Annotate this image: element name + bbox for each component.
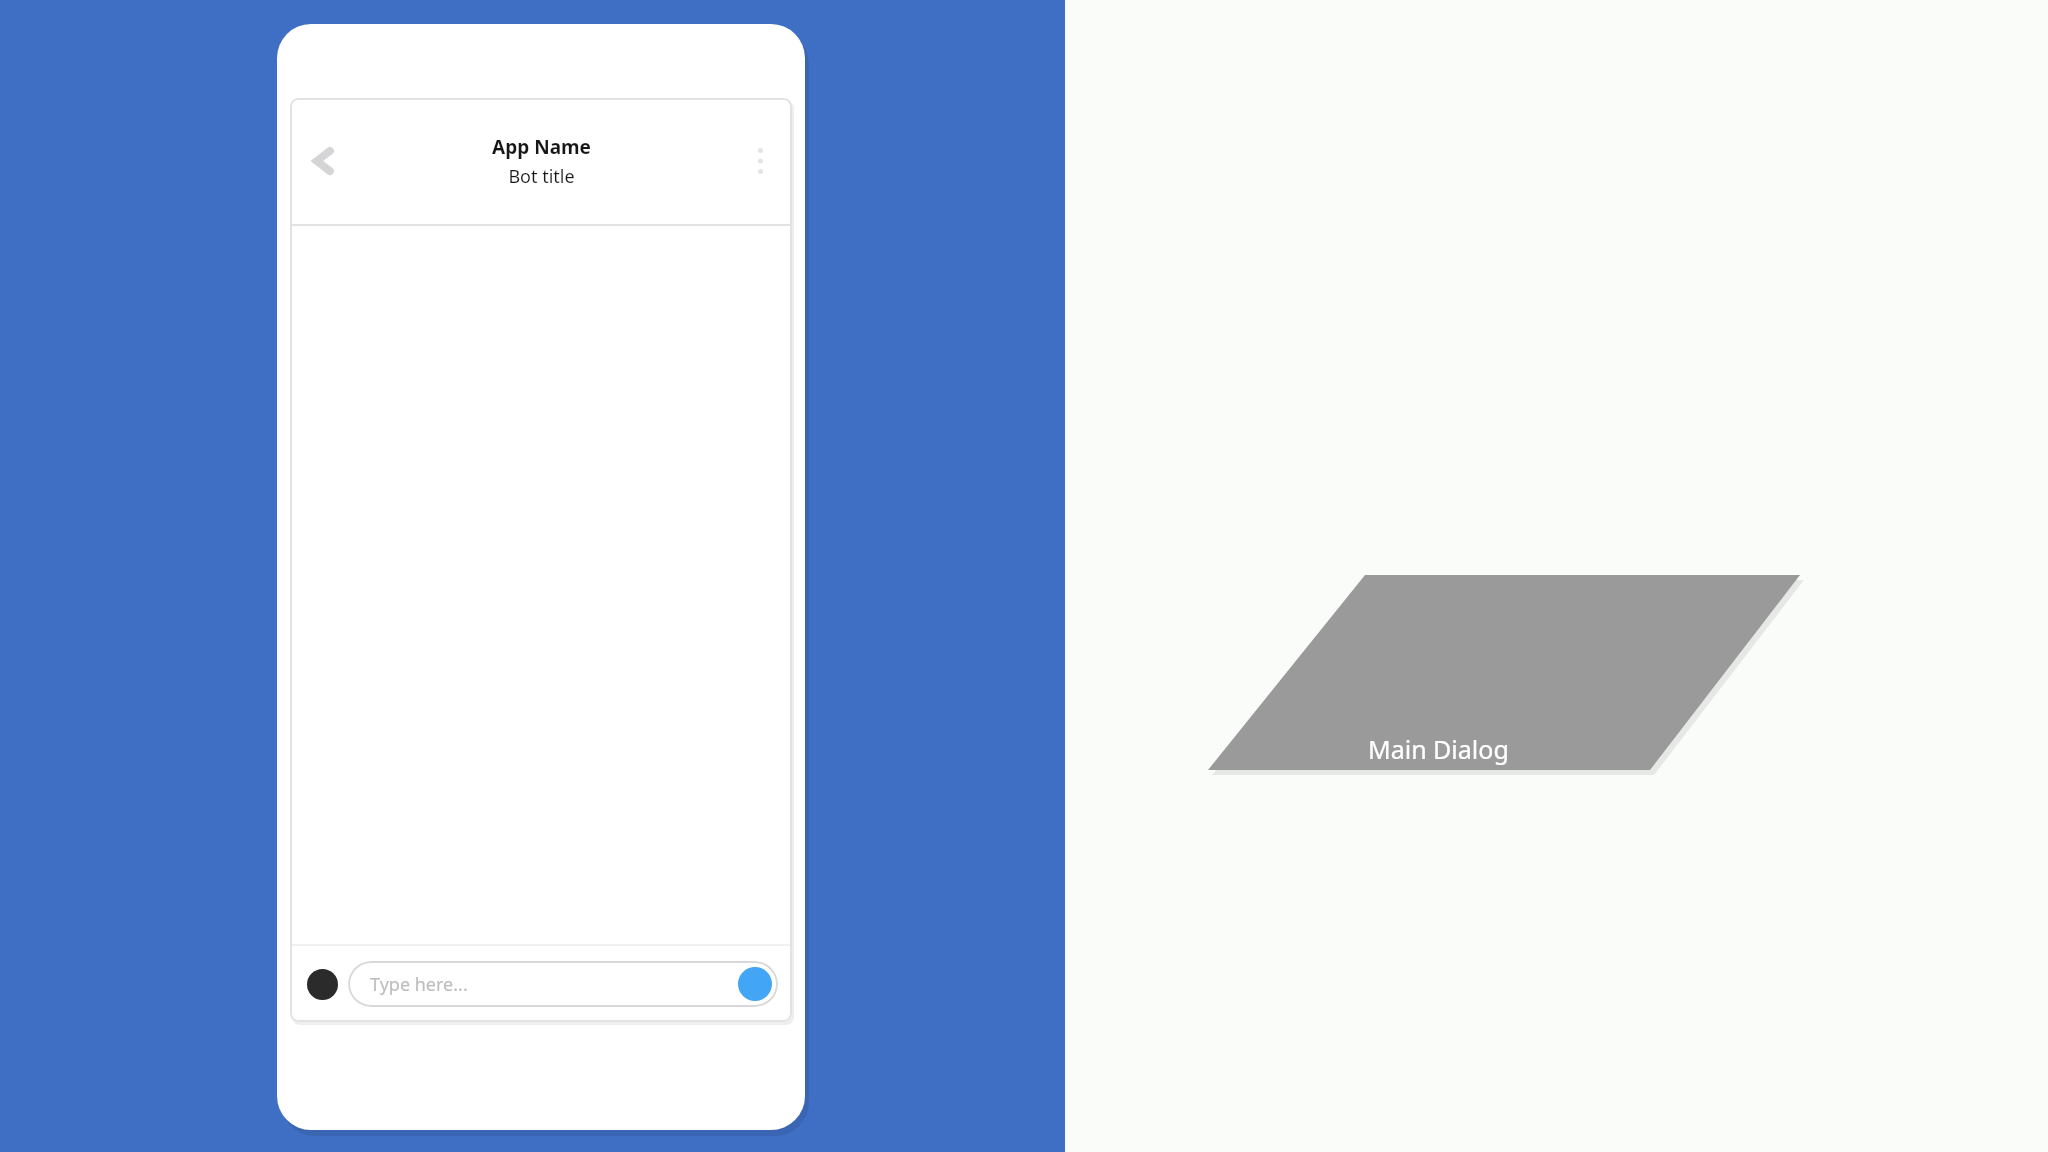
staticText: Main Dialog [1368, 732, 1509, 766]
button[interactable]: Send [736, 965, 774, 1003]
button[interactable]: More options [736, 137, 784, 185]
staticText: Type here... [370, 972, 468, 997]
button[interactable]: Back [296, 133, 352, 189]
staticText: Bot title [508, 164, 575, 189]
staticText: App Name [492, 134, 591, 160]
button[interactable]: Attach [300, 962, 344, 1006]
button[interactable]: Type here... [348, 961, 778, 1007]
